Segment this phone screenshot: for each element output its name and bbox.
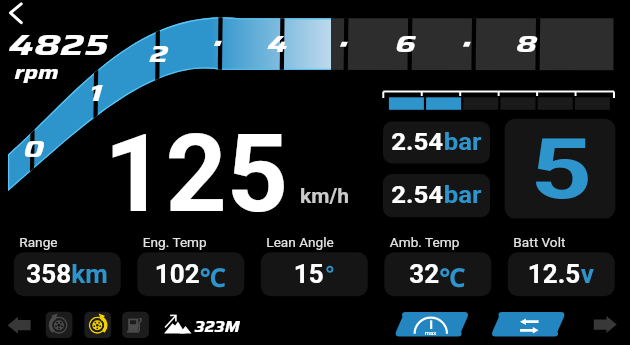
button[interactable]: Gear 5	[505, 119, 616, 219]
button[interactable]: Altitude 323 metres	[160, 312, 240, 338]
button[interactable]: Brake status	[43, 310, 74, 340]
button[interactable]	[508, 252, 615, 296]
button[interactable]	[261, 252, 368, 296]
button[interactable]: ABS warning	[82, 310, 113, 340]
button[interactable]: Max speed	[394, 311, 471, 337]
button[interactable]: Swap display	[491, 311, 568, 337]
button[interactable]: Back	[5, 3, 31, 27]
button[interactable]	[14, 252, 121, 296]
button[interactable]	[137, 252, 244, 296]
button[interactable]	[384, 252, 491, 296]
button[interactable]: Front tyre pressure	[383, 121, 490, 163]
button[interactable]: Next screen	[590, 313, 620, 337]
button[interactable]: Fuel level	[120, 310, 151, 340]
button[interactable]: Rear tyre pressure	[383, 174, 490, 217]
